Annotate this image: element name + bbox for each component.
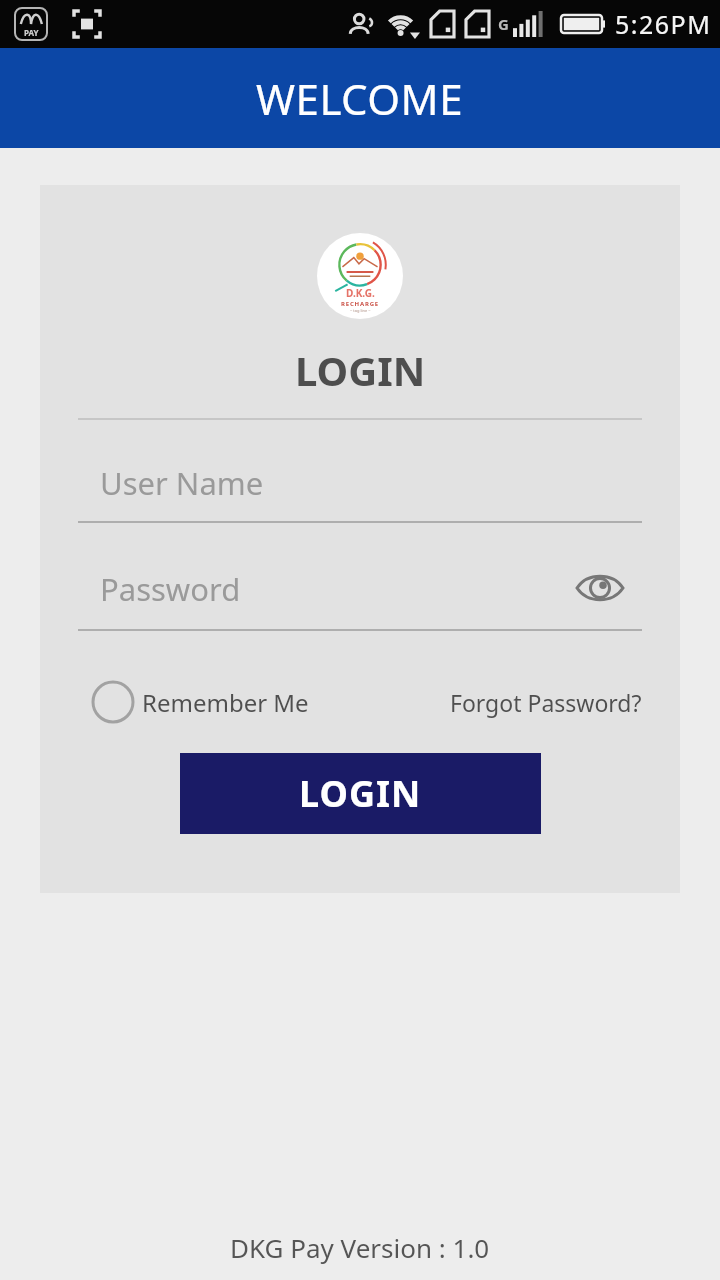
staticText: DKG Pay Version : 1.0 xyxy=(230,1230,490,1265)
staticText: User Name xyxy=(100,462,264,504)
button[interactable] xyxy=(575,571,625,605)
staticText: RECHARGE xyxy=(341,300,379,308)
button[interactable]: Password xyxy=(78,568,642,631)
button[interactable]: User Name xyxy=(78,462,642,523)
staticText: G xyxy=(498,14,509,34)
staticText: D.K.G. xyxy=(346,286,375,300)
staticText: Password xyxy=(100,568,575,608)
button[interactable]: Forgot Password? xyxy=(450,687,642,718)
button[interactable]: Remember Me xyxy=(78,680,309,724)
staticText: ~ tag line ~ xyxy=(350,308,371,313)
staticText: LOGIN xyxy=(295,343,426,397)
staticText: 5:26PM xyxy=(615,7,712,41)
staticText: Remember Me xyxy=(142,686,309,719)
staticText: WELCOME xyxy=(256,70,464,127)
staticText: PAY xyxy=(24,27,39,38)
staticText: LOGIN xyxy=(299,769,422,818)
button[interactable]: LOGIN xyxy=(180,753,541,834)
